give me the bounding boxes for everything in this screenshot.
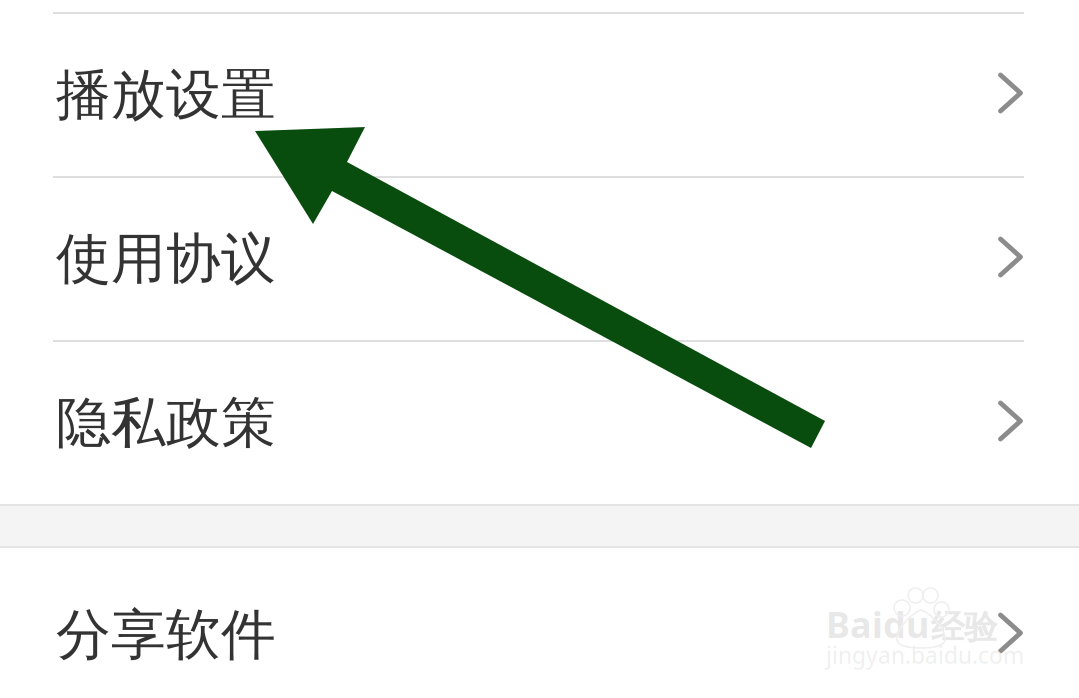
staticText: 分享软件 [56,601,276,668]
button[interactable]: 隐私政策 [0,342,1079,504]
button[interactable]: 分享软件 [0,548,1079,698]
staticText: 播放设置 [56,61,276,128]
staticText: 经验 [931,607,997,648]
staticText: jingyan.baidu.com [826,640,1024,670]
staticText: 隐私政策 [56,389,276,456]
staticText: Baidu [826,600,929,648]
button[interactable]: 播放设置 [0,14,1079,176]
staticText: 使用协议 [56,225,276,292]
button[interactable]: 使用协议 [0,178,1079,340]
